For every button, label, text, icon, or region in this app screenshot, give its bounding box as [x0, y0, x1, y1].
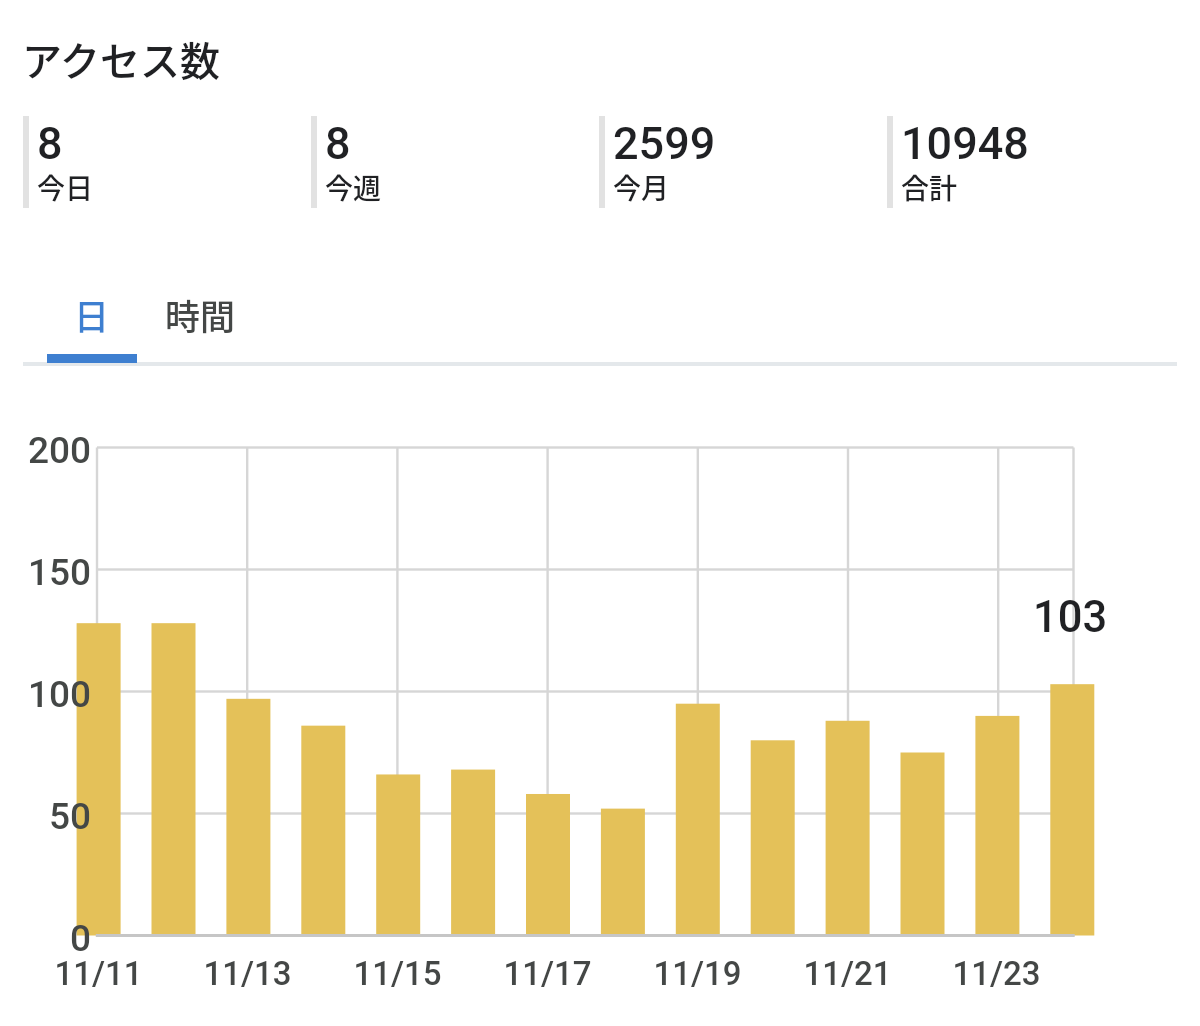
staticText: 150 — [28, 551, 92, 593]
staticText: 11/23 — [952, 954, 1041, 993]
button[interactable]: 10948 — [887, 116, 1029, 208]
staticText: 200 — [28, 429, 92, 471]
staticText: 0 — [70, 917, 92, 959]
button[interactable]: 日 — [46, 275, 138, 353]
staticText: 8 — [325, 117, 351, 170]
staticText: 合計 — [901, 167, 958, 206]
staticText: 時間 — [165, 289, 236, 340]
staticText: 日 — [74, 289, 110, 340]
staticText: 103 — [1033, 592, 1108, 643]
staticText: 11/21 — [803, 954, 892, 993]
button[interactable]: 時間 — [148, 275, 252, 353]
staticText: 10948 — [901, 117, 1029, 170]
staticText: 11/13 — [203, 954, 292, 993]
staticText: 11/19 — [653, 954, 742, 993]
staticText: 11/11 — [54, 954, 143, 993]
staticText: 今月 — [613, 167, 670, 206]
button[interactable]: 日別アクセス数グラフ — [97, 448, 1074, 936]
button[interactable]: 8 — [23, 116, 94, 208]
staticText: 今週 — [325, 167, 382, 206]
button[interactable]: 8 — [311, 116, 382, 208]
staticText: 8 — [37, 117, 63, 170]
staticText: 11/17 — [503, 954, 592, 993]
staticText: アクセス数 — [22, 30, 220, 88]
staticText: 今日 — [37, 167, 94, 206]
staticText: 50 — [49, 795, 92, 837]
staticText: 11/15 — [353, 954, 442, 993]
staticText: 2599 — [613, 117, 716, 170]
button[interactable]: 2599 — [599, 116, 716, 208]
staticText: 100 — [28, 673, 92, 715]
